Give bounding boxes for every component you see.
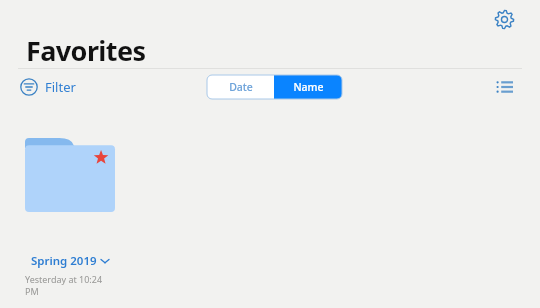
button[interactable]: Settings xyxy=(487,2,521,36)
staticText: Name xyxy=(293,80,324,94)
button[interactable]: Name xyxy=(274,75,342,99)
staticText: Yesterday at 10:24 PM xyxy=(25,273,115,297)
staticText: Date xyxy=(229,80,253,94)
staticText: Spring 2019 xyxy=(31,253,97,269)
staticText: Favorites xyxy=(26,32,146,69)
staticText: Filter xyxy=(45,78,76,96)
button[interactable]: Spring 2019 xyxy=(25,138,115,297)
button[interactable]: Filter xyxy=(18,74,78,100)
button[interactable]: List view xyxy=(488,74,520,100)
button[interactable]: Date xyxy=(207,75,274,99)
